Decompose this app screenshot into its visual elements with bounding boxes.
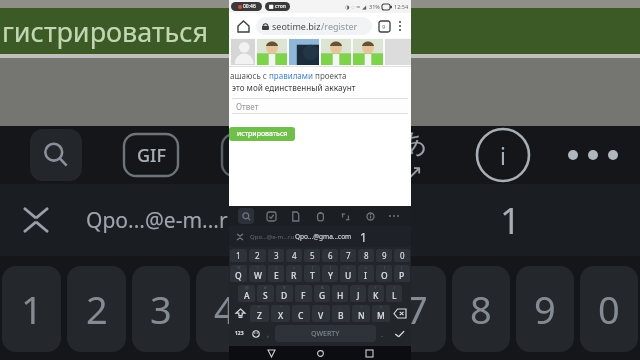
- button[interactable]: Stickers: [263, 208, 279, 224]
- button[interactable]: ": [271, 305, 290, 322]
- button[interactable]: Back: [264, 346, 278, 360]
- button[interactable]: Shift: [230, 305, 250, 322]
- staticText: Ответ: [236, 101, 259, 112]
- button[interactable]: 4: [286, 249, 302, 262]
- button[interactable]: Qpo...@gma...com: [295, 232, 352, 241]
- staticText: 3: [150, 283, 172, 335]
- button[interactable]: Info: [362, 208, 378, 224]
- button[interactable]: @: [238, 285, 255, 302]
- button[interactable]: Tabs: [376, 18, 392, 34]
- button[interactable]: ?: [372, 305, 390, 322]
- button[interactable]: }: [394, 265, 410, 282]
- staticText: U: [345, 270, 352, 282]
- button[interactable]: 8: [358, 249, 374, 262]
- button[interactable]: 3: [268, 249, 284, 262]
- button[interactable]: 7: [340, 249, 356, 262]
- button[interactable]: Recents: [362, 346, 376, 360]
- button[interactable]: More options: [394, 13, 406, 38]
- button[interactable]: Documents: [287, 208, 303, 224]
- button[interactable]: +: [350, 285, 366, 302]
- button[interactable]: (: [368, 285, 384, 302]
- staticText: A: [244, 290, 250, 302]
- button[interactable]: .: [377, 325, 388, 342]
- button[interactable]: ): [386, 285, 402, 302]
- button[interactable]: !: [352, 305, 370, 322]
- staticText: 4: [214, 283, 236, 335]
- staticText: G: [319, 290, 326, 302]
- button[interactable]: -: [332, 285, 348, 302]
- staticText: 2: [86, 283, 108, 335]
- button[interactable]: $: [276, 285, 293, 302]
- staticText: 12:54: [394, 3, 409, 10]
- button[interactable]: Clipboard: [312, 208, 328, 224]
- staticText: seotime.biz: [272, 20, 321, 32]
- button[interactable]: 2: [249, 249, 266, 262]
- button[interactable]: Ответ: [232, 98, 408, 114]
- button[interactable]: Expand suggestions: [232, 229, 248, 245]
- button[interactable]: Qpo...@e-m...ru: [250, 233, 295, 241]
- button[interactable]: 0: [394, 249, 410, 262]
- button[interactable]: _: [295, 285, 312, 302]
- staticText: .: [381, 328, 384, 339]
- button[interactable]: Home: [234, 17, 252, 35]
- staticText: ': [301, 305, 302, 310]
- staticText: &: [321, 285, 324, 290]
- staticText: *: [258, 305, 261, 310]
- button[interactable]: %: [230, 265, 247, 282]
- staticText: N: [358, 310, 365, 322]
- button[interactable]: ;: [332, 305, 350, 322]
- button[interactable]: *: [250, 305, 269, 322]
- staticText: 6: [328, 250, 333, 261]
- staticText: 7: [406, 283, 428, 335]
- staticText: QWERTY: [311, 329, 340, 339]
- staticText: ↗: [406, 160, 423, 183]
- button[interactable]: |: [268, 265, 284, 282]
- button[interactable]: Home: [313, 346, 327, 360]
- button[interactable]: {: [376, 265, 392, 282]
- button[interactable]: ,: [263, 325, 274, 342]
- staticText: K: [373, 290, 379, 302]
- staticText: (: [375, 285, 377, 290]
- button[interactable]: Search: [238, 208, 254, 224]
- button[interactable]: ]: [322, 265, 338, 282]
- staticText: ?: [380, 305, 382, 310]
- staticText: ): [394, 285, 396, 290]
- button[interactable]: Backspace: [390, 305, 410, 322]
- button[interactable]: 6: [322, 249, 338, 262]
- button[interactable]: \: [249, 265, 266, 282]
- staticText: D: [281, 290, 288, 302]
- button[interactable]: 1: [230, 249, 247, 262]
- button[interactable]: [: [304, 265, 320, 282]
- button[interactable]: ': [292, 305, 310, 322]
- staticText: \: [257, 265, 259, 270]
- staticText: C: [298, 310, 304, 322]
- button[interactable]: Translate: [337, 208, 353, 224]
- button[interactable]: :: [312, 305, 330, 322]
- button[interactable]: 5: [304, 249, 320, 262]
- staticText: V: [318, 310, 324, 322]
- staticText: 5: [278, 283, 300, 335]
- staticText: Z: [257, 310, 262, 322]
- staticText: 123: [235, 330, 244, 337]
- staticText: 6: [342, 283, 364, 335]
- staticText: |: [275, 265, 278, 270]
- button[interactable]: QWERTY: [275, 325, 376, 342]
- staticText: ашаюсь с: [230, 70, 269, 81]
- button[interactable]: Enter: [388, 325, 410, 342]
- staticText: 5: [310, 250, 315, 261]
- button[interactable]: =: [286, 265, 302, 282]
- staticText: Y: [328, 270, 333, 282]
- button[interactable]: #: [257, 285, 274, 302]
- button[interactable]: seotime.biz: [256, 17, 372, 35]
- button[interactable]: >: [358, 265, 374, 282]
- button[interactable]: Emoji: [248, 325, 263, 342]
- button[interactable]: More: [386, 208, 402, 224]
- button[interactable]: 1: [360, 229, 367, 245]
- staticText: R: [291, 270, 297, 282]
- button[interactable]: 9: [376, 249, 392, 262]
- button[interactable]: &: [314, 285, 330, 302]
- button[interactable]: 123: [230, 325, 248, 342]
- button[interactable]: <: [340, 265, 356, 282]
- button[interactable]: правилами: [269, 70, 313, 81]
- button[interactable]: истрироваться: [229, 127, 295, 141]
